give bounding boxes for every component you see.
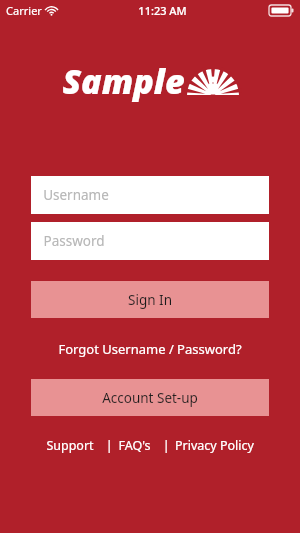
staticText: | <box>153 437 173 454</box>
button[interactable]: Sign In <box>31 281 269 318</box>
button[interactable]: Password <box>31 222 269 260</box>
staticText: Carrier <box>6 3 42 18</box>
staticText: 11:23 AM <box>138 3 187 18</box>
staticText: Privacy Policy <box>175 437 254 454</box>
staticText: Support <box>46 437 94 454</box>
staticText: Account Set-up <box>102 389 198 407</box>
button[interactable]: Support <box>44 434 96 457</box>
button[interactable]: Username <box>31 176 269 214</box>
staticText: Username <box>43 186 109 204</box>
staticText: Sign In <box>128 291 172 309</box>
button[interactable]: Account Set-up <box>31 379 269 416</box>
staticText: | <box>96 437 116 454</box>
staticText: Sample <box>62 58 185 104</box>
staticText: Password <box>43 232 105 250</box>
staticText: Forgot Username / Password? <box>58 340 242 358</box>
button[interactable]: FAQ's <box>116 434 153 457</box>
button[interactable]: Forgot Username / Password? <box>31 336 269 362</box>
staticText: FAQ's <box>118 437 151 454</box>
button[interactable]: Privacy Policy <box>173 434 256 457</box>
